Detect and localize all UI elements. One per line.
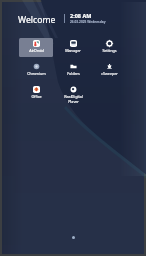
staticText: cSweeper (101, 71, 118, 76)
staticText: 2:08 AM (70, 12, 92, 19)
staticText: AirDroid (29, 48, 44, 53)
button[interactable]: Office (19, 84, 53, 103)
button[interactable]: Chromium (19, 61, 53, 80)
button[interactable]: Welcome (18, 14, 56, 26)
staticText: RealDigital Player (64, 94, 83, 103)
button[interactable]: Manager (56, 38, 90, 57)
staticText: Settings (102, 48, 117, 53)
button[interactable]: Folders (56, 61, 90, 80)
button[interactable]: cSweeper (92, 61, 126, 80)
staticText: Manager (65, 48, 81, 53)
button[interactable]: Settings (92, 38, 126, 57)
button[interactable]: RealDigital Player (56, 84, 90, 103)
staticText: Chromium (27, 71, 46, 76)
staticText: Office (31, 94, 42, 99)
staticText: 26.03.2025 Wednesday (70, 20, 106, 24)
staticText: Folders (67, 71, 80, 76)
button[interactable]: AirDroid (19, 38, 53, 57)
